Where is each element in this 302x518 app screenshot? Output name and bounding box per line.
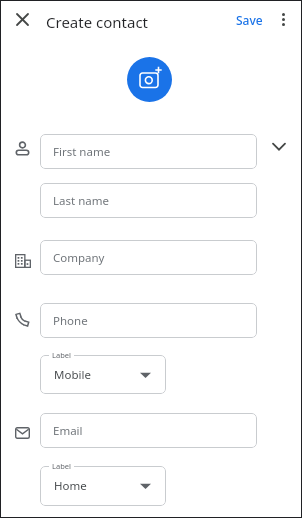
button[interactable]: Company xyxy=(40,240,257,275)
button[interactable] xyxy=(267,135,291,159)
staticText: First name xyxy=(53,144,111,160)
staticText: Home xyxy=(54,478,87,494)
button[interactable]: Mobile xyxy=(40,355,166,394)
staticText: Email xyxy=(53,423,83,439)
button[interactable]: Home xyxy=(40,466,166,506)
button[interactable]: Email xyxy=(40,413,257,448)
staticText: Last name xyxy=(53,193,109,209)
staticText: Phone xyxy=(53,313,88,329)
button[interactable] xyxy=(127,57,172,102)
staticText: Label xyxy=(52,461,71,471)
staticText: Company xyxy=(53,250,105,266)
button[interactable] xyxy=(12,9,33,30)
staticText: Save xyxy=(236,12,263,28)
button[interactable]: First name xyxy=(40,134,257,169)
staticText: Label xyxy=(52,350,71,360)
button[interactable] xyxy=(276,5,291,34)
staticText: Create contact xyxy=(46,12,149,32)
button[interactable]: Phone xyxy=(40,303,257,338)
staticText: Mobile xyxy=(54,367,91,383)
button[interactable]: Save xyxy=(230,8,268,32)
button[interactable]: Last name xyxy=(40,183,257,218)
